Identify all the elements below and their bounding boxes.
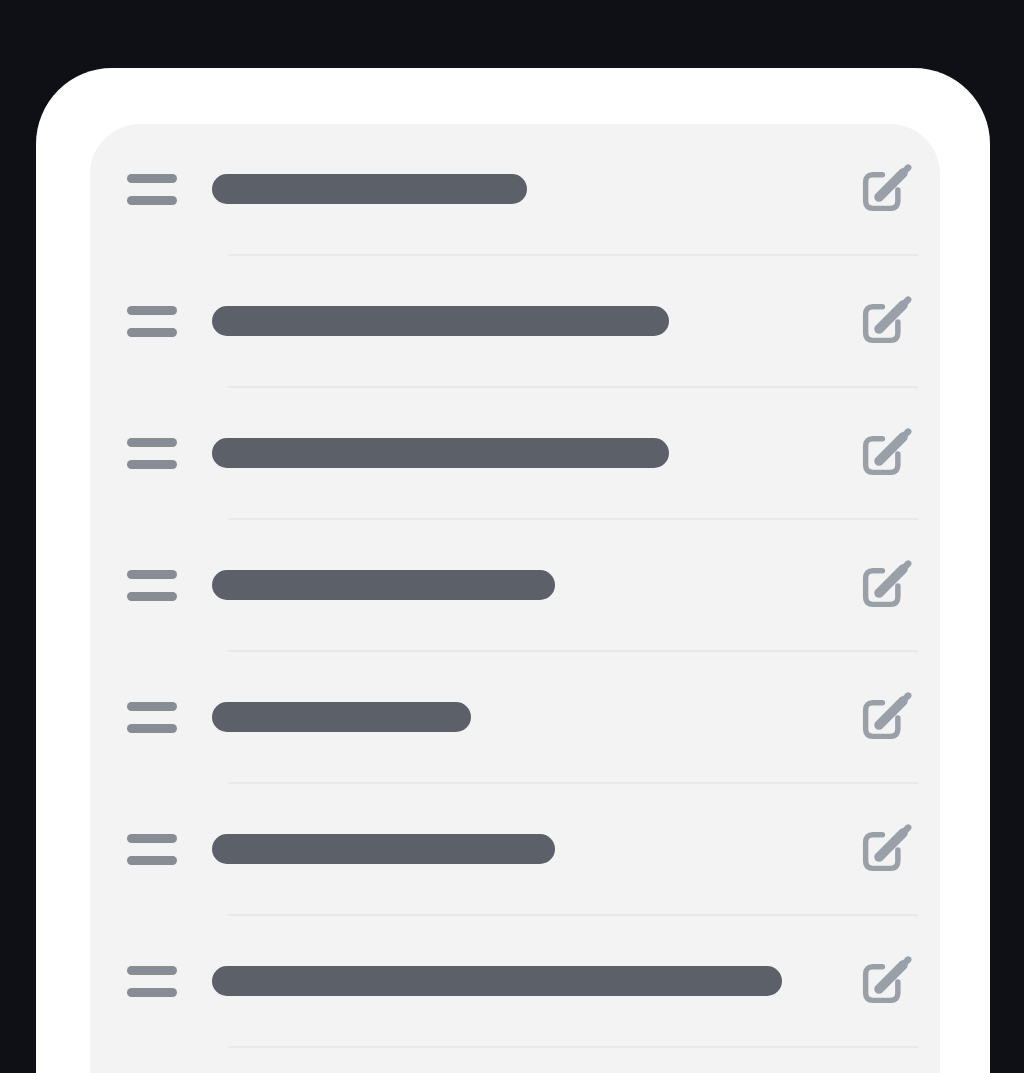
button[interactable]: Edit [848,944,922,1018]
button[interactable]: Reorder item [90,652,940,782]
button[interactable]: Edit [848,548,922,622]
button[interactable]: Edit [848,812,922,886]
button[interactable]: Reorder item [90,388,940,518]
button[interactable]: Reorder item [90,124,940,254]
button[interactable]: Edit [848,416,922,490]
button[interactable]: Edit [848,152,922,226]
button[interactable]: Reorder item [110,549,194,621]
button[interactable]: Edit [848,284,922,358]
button[interactable]: Reorder item [110,153,194,225]
button[interactable]: Reorder item [110,681,194,753]
button[interactable]: Reorder item [90,784,940,914]
button[interactable]: Reorder item [90,256,940,386]
button[interactable]: Reorder item [110,417,194,489]
button[interactable]: Reorder item [110,945,194,1017]
button[interactable]: Reorder item [90,520,940,650]
button[interactable]: Reorder item [110,813,194,885]
button[interactable]: Edit [848,680,922,754]
button[interactable]: Reorder item [110,285,194,357]
button[interactable]: Reorder item [90,916,940,1046]
